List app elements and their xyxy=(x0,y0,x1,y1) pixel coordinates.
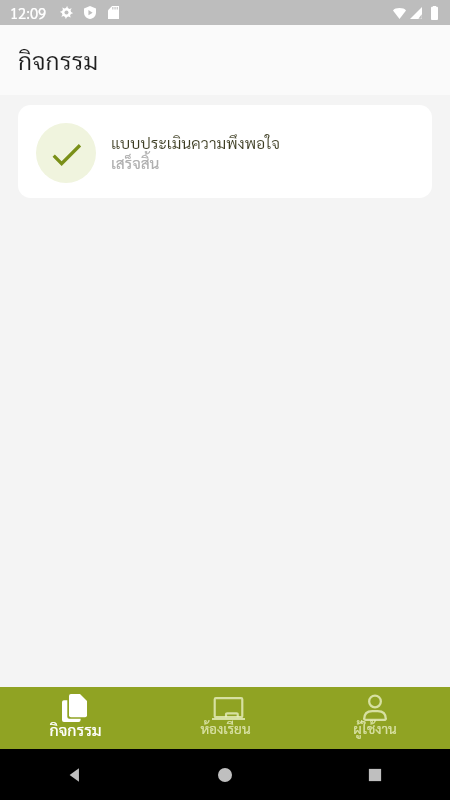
staticText: ห้องเรียน xyxy=(200,719,251,737)
staticText: 12:09 xyxy=(10,3,47,22)
staticText: ผู้ใช้งาน xyxy=(353,719,397,737)
staticText: กิจกรรม xyxy=(18,44,99,76)
button[interactable]: แบบประเมินความพึงพอใจ xyxy=(18,105,432,198)
other: Back xyxy=(66,766,84,784)
other: Home xyxy=(216,766,234,784)
button[interactable]: กิจกรรม xyxy=(0,687,150,749)
button[interactable]: ห้องเรียน xyxy=(150,687,300,749)
staticText: กิจกรรม xyxy=(49,719,102,740)
other: Recent apps xyxy=(366,766,384,784)
button[interactable]: ผู้ใช้งาน xyxy=(300,687,450,749)
staticText: เสร็จสิ้น xyxy=(111,153,160,173)
staticText: แบบประเมินความพึงพอใจ xyxy=(111,132,281,152)
